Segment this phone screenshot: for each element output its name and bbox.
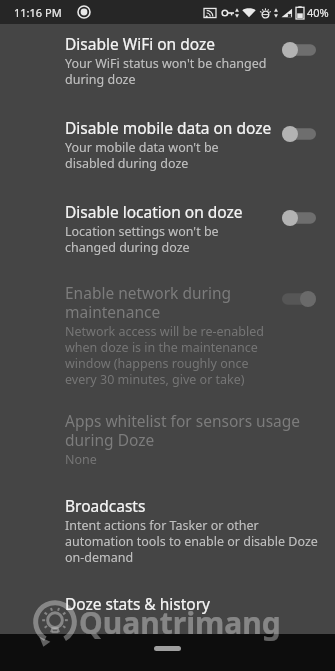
- button[interactable]: Disable location on doze: [0, 201, 335, 256]
- button[interactable]: Disable WiFi on doze: [273, 33, 325, 67]
- staticText: Disable mobile data on doze: [65, 117, 272, 138]
- staticText: Disable location on doze: [65, 201, 243, 222]
- staticText: Network access will be re-enabled when d…: [65, 323, 264, 388]
- button[interactable]: Broadcasts: [0, 495, 335, 566]
- button[interactable]: Disable mobile data on doze: [0, 117, 335, 172]
- staticText: Apps whitelist for sensors usage during …: [65, 410, 301, 450]
- staticText: Your mobile data won't be disabled durin…: [65, 139, 219, 172]
- button[interactable]: Enable network during maintenance: [273, 282, 325, 316]
- staticText: Quantrimang: [79, 602, 281, 643]
- staticText: 40%: [307, 5, 329, 20]
- button[interactable]: Disable location on doze: [273, 201, 325, 235]
- button[interactable]: Home: [154, 646, 181, 651]
- button[interactable]: Doze stats & history: [0, 593, 335, 614]
- button[interactable]: Enable network during maintenance: [0, 282, 335, 388]
- staticText: 11:16 PM: [14, 5, 62, 20]
- button[interactable]: Disable WiFi on doze: [0, 24, 335, 88]
- button[interactable]: Disable mobile data on doze: [273, 117, 325, 151]
- button[interactable]: Apps whitelist for sensors usage during …: [0, 410, 335, 468]
- staticText: Disable WiFi on doze: [65, 33, 215, 54]
- staticText: Intent actions for Tasker or other autom…: [65, 517, 318, 566]
- staticText: Enable network during maintenance: [65, 282, 232, 322]
- staticText: None: [65, 451, 97, 468]
- staticText: Your WiFi status won't be changed during…: [65, 55, 267, 88]
- staticText: Broadcasts: [65, 495, 146, 516]
- staticText: Doze stats & history: [65, 593, 211, 614]
- staticText: Location settings won't be changed durin…: [65, 223, 219, 256]
